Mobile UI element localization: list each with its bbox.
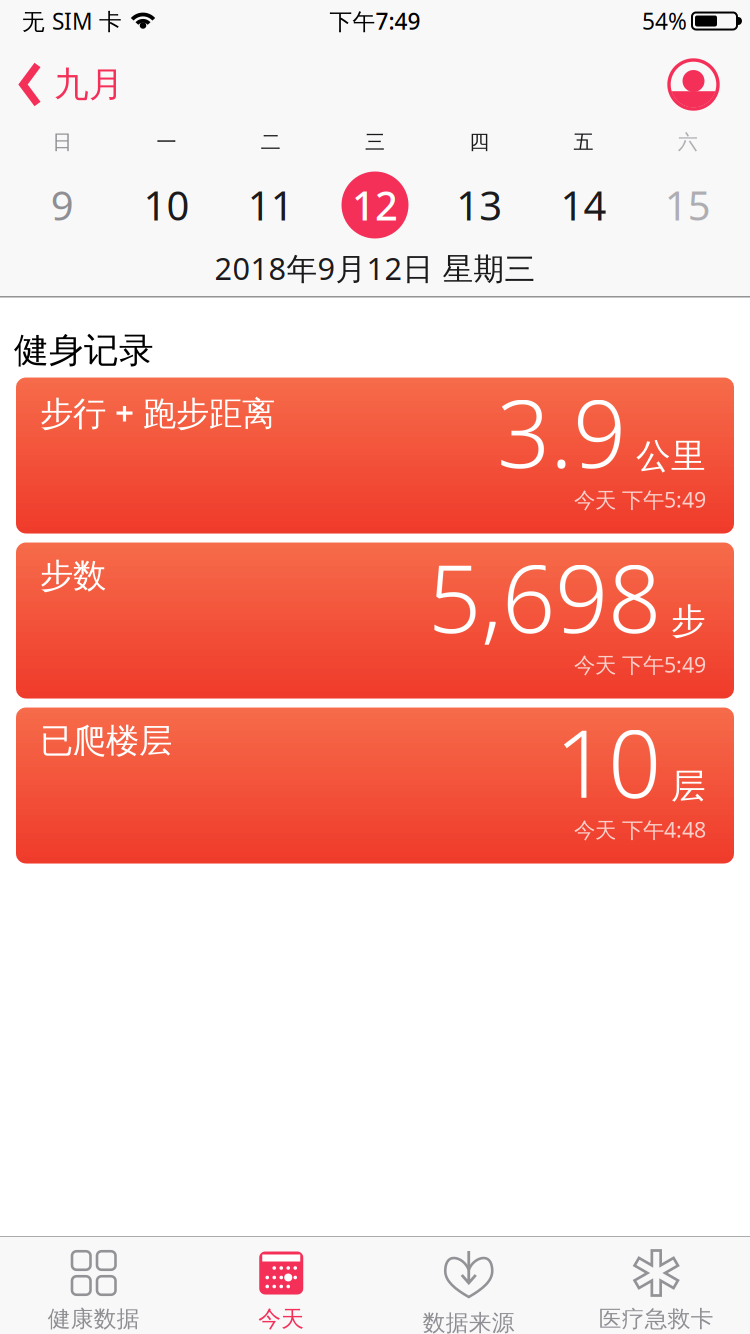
button[interactable]: 今天	[187, 1237, 375, 1334]
button[interactable]: 九月	[19, 61, 124, 107]
staticText: 9	[51, 178, 74, 231]
button[interactable]: 数据来源	[375, 1237, 562, 1334]
staticText: 2018年9月12日 星期三	[214, 248, 535, 288]
staticText: 下午7:49	[329, 6, 420, 36]
button[interactable]: 步数	[16, 542, 734, 698]
staticText: 14	[561, 178, 607, 231]
button[interactable]: 10	[114, 170, 219, 240]
button[interactable]: 医疗急救卡	[562, 1237, 750, 1334]
staticText: 今天 下午4:48	[574, 815, 706, 844]
staticText: 11	[248, 178, 294, 231]
staticText: 医疗急救卡	[599, 1305, 714, 1333]
staticText: 五	[574, 130, 594, 154]
staticText: 健身记录	[14, 329, 154, 372]
staticText: 公里	[636, 435, 706, 477]
staticText: 步行 + 跑步距离	[40, 390, 275, 435]
staticText: 已爬楼层	[40, 720, 172, 761]
button[interactable]	[669, 60, 718, 109]
button[interactable]: 9	[10, 170, 114, 240]
staticText: 无 SIM 卡	[22, 6, 122, 36]
staticText: 15	[665, 178, 711, 231]
staticText: 5,698	[428, 534, 661, 658]
staticText: 今天 下午5:49	[574, 485, 706, 514]
button[interactable]: 已爬楼层	[16, 707, 734, 863]
staticText: 一	[156, 130, 176, 154]
staticText: 12	[352, 178, 398, 231]
button[interactable]: 13	[427, 170, 531, 240]
button[interactable]: 14	[531, 170, 636, 240]
staticText: 步数	[40, 555, 106, 596]
staticText: 3.9	[497, 369, 626, 493]
staticText: 健康数据	[48, 1305, 140, 1333]
staticText: 层	[671, 765, 706, 807]
staticText: 日	[52, 130, 72, 154]
staticText: 10	[143, 178, 189, 231]
staticText: 步	[671, 600, 706, 642]
staticText: 四	[469, 130, 489, 154]
button[interactable]: 12	[323, 170, 427, 240]
button[interactable]: 步行 + 跑步距离	[16, 377, 734, 533]
staticText: 数据来源	[423, 1309, 515, 1334]
staticText: 54%	[642, 6, 687, 36]
staticText: 今天 下午5:49	[574, 650, 706, 679]
button[interactable]: 健康数据	[0, 1237, 187, 1334]
staticText: 二	[261, 130, 281, 154]
staticText: 10	[555, 699, 661, 823]
staticText: 今天	[258, 1305, 304, 1333]
staticText: 九月	[54, 63, 124, 106]
staticText: 六	[678, 130, 698, 154]
staticText: 13	[456, 178, 502, 231]
staticText: 三	[365, 130, 385, 154]
button[interactable]: 15	[636, 170, 740, 240]
button[interactable]: 11	[219, 170, 323, 240]
